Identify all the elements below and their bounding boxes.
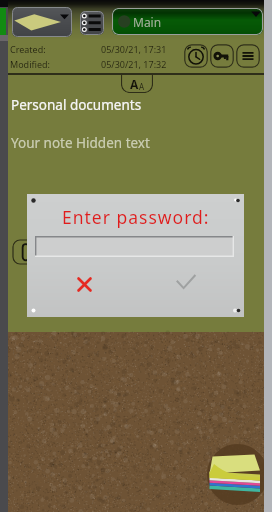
button[interactable]: Main <box>112 8 263 35</box>
button[interactable]: Password protect <box>210 44 234 68</box>
button[interactable]: Cancel <box>62 268 106 300</box>
staticText: 05/30/21, 17:31 <box>101 43 167 55</box>
button[interactable]: New note <box>199 444 271 508</box>
button[interactable]: Attachments <box>12 239 40 265</box>
staticText: A <box>130 76 139 92</box>
staticText: Created: <box>10 43 46 55</box>
staticText: Personal documents <box>11 96 142 114</box>
button[interactable]: Paper type <box>12 7 72 37</box>
button[interactable]: Menu <box>236 44 260 68</box>
staticText: Your note Hidden text <box>11 134 150 152</box>
button[interactable]: Note list <box>80 11 104 35</box>
button[interactable]: Set reminder <box>184 44 208 68</box>
button[interactable]: Password field <box>35 236 234 257</box>
staticText: Enter password: <box>62 205 210 229</box>
staticText: Main <box>133 14 162 30</box>
button[interactable]: Font size A4 <box>121 75 153 93</box>
button[interactable]: Confirm <box>164 266 208 298</box>
staticText: A <box>139 81 145 92</box>
staticText: Modified: <box>10 58 50 70</box>
staticText: 05/30/21, 17:32 <box>101 58 167 70</box>
